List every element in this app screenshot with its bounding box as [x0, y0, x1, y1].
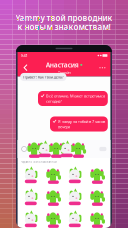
button[interactable]: Набор стикеров [29, 144, 40, 153]
staticText: Недавно использованные [21, 160, 57, 164]
button[interactable]: Стикер [88, 188, 106, 206]
button[interactable]: Стикер [22, 188, 40, 206]
button[interactable]: Стикер [88, 166, 106, 184]
staticText: Онлайн [57, 70, 70, 75]
button[interactable]: Стикер [88, 210, 106, 228]
button[interactable]: Стикер [22, 166, 40, 184]
button[interactable]: Стикер [22, 210, 40, 228]
button[interactable]: Набор стикеров [40, 144, 51, 153]
staticText: Привет! Как твои дела? [23, 74, 64, 80]
button[interactable]: Ещё [97, 59, 108, 76]
button[interactable]: Набор стикеров [73, 144, 84, 153]
button[interactable]: Стикер [44, 210, 62, 228]
button[interactable]: Стикер [66, 188, 84, 206]
staticText: 9:41 [21, 53, 28, 58]
button[interactable]: Стикер [44, 166, 62, 184]
button[interactable]: Назад [20, 59, 31, 76]
button[interactable]: Набор стикеров [51, 144, 62, 153]
staticText: Всё отлично. Может встретимся сегодня? [46, 93, 105, 104]
staticText: Я заеду за тобой в 7 часов вечера [58, 119, 105, 129]
button[interactable]: Настройки стикеров [97, 144, 108, 153]
staticText: к новым знакомствам! [17, 22, 110, 32]
button[interactable]: Набор стикеров [62, 144, 73, 153]
staticText: Yammy твой проводник [15, 13, 112, 23]
button[interactable]: Стикер [66, 210, 84, 228]
button[interactable]: Стикер [66, 166, 84, 184]
button[interactable]: Стикер [44, 188, 62, 206]
button[interactable]: Недавние [20, 144, 29, 153]
staticText: Анастасия [46, 60, 79, 69]
